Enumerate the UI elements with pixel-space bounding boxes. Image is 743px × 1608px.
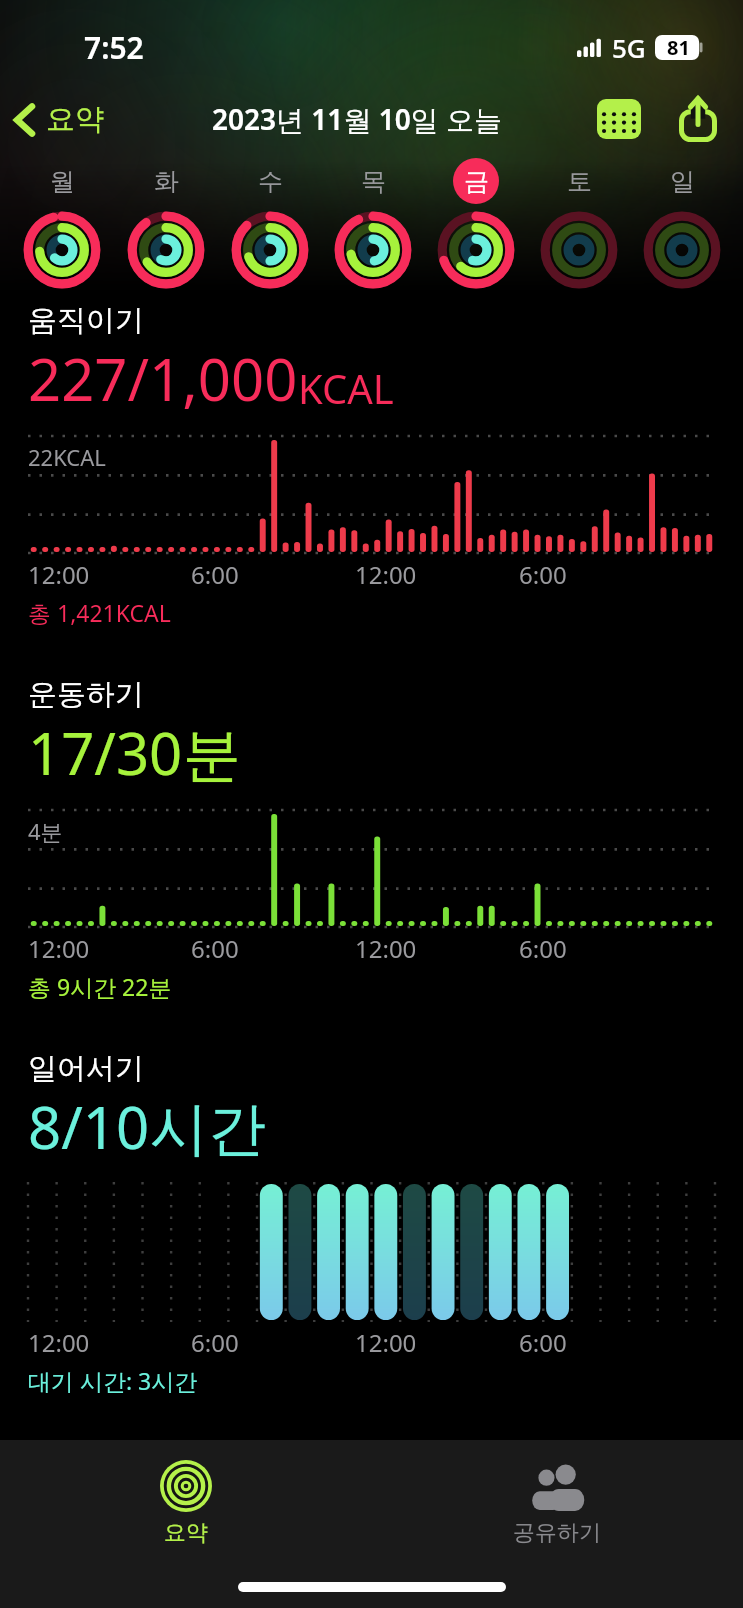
staticText: 12:00 xyxy=(355,932,417,965)
staticText: 목 xyxy=(361,166,386,197)
staticText: 요약 xyxy=(164,1519,208,1547)
staticText: 6:00 xyxy=(519,932,567,965)
staticText: 화 xyxy=(154,166,179,197)
staticText: KCAL xyxy=(298,361,394,415)
staticText: 수 xyxy=(258,166,283,197)
staticText: 6:00 xyxy=(191,1326,239,1359)
button[interactable]: 목 xyxy=(321,158,424,290)
staticText: 6:00 xyxy=(191,558,239,591)
staticText: 8/10 xyxy=(28,1087,150,1166)
staticText: 공유하기 xyxy=(513,1519,601,1547)
button[interactable]: 토 xyxy=(527,158,630,290)
staticText: 12:00 xyxy=(28,1326,90,1359)
button[interactable]: 일 xyxy=(630,158,733,290)
staticText: 총 9시간 22분 xyxy=(28,971,172,1002)
button[interactable]: Share xyxy=(671,88,725,150)
staticText: 운동하기 xyxy=(28,676,144,713)
button[interactable]: 수 xyxy=(218,158,321,290)
staticText: 12:00 xyxy=(28,932,90,965)
staticText: 총 1,421KCAL xyxy=(28,597,171,628)
staticText: 6:00 xyxy=(191,932,239,965)
button[interactable]: 금 xyxy=(424,158,527,290)
button[interactable]: 화 xyxy=(114,158,218,290)
staticText: 12:00 xyxy=(355,1326,417,1359)
button[interactable]: 공유하기 xyxy=(371,1454,743,1553)
staticText: 227/1,000 xyxy=(28,339,298,418)
staticText: 5G xyxy=(612,30,646,65)
button[interactable]: 요약 xyxy=(0,1454,371,1553)
staticText: 움직이기 xyxy=(28,302,144,339)
button[interactable]: 요약 xyxy=(0,97,114,142)
staticText: 12:00 xyxy=(28,558,90,591)
staticText: 월 xyxy=(50,166,75,197)
button[interactable]: Calendar xyxy=(589,91,649,147)
staticText: 일 xyxy=(670,166,695,197)
staticText: 토 xyxy=(567,166,592,197)
staticText: 금 xyxy=(464,166,489,197)
staticText: 7:52 xyxy=(84,27,144,68)
staticText: 4분 xyxy=(28,816,63,846)
staticText: 6:00 xyxy=(519,1326,567,1359)
staticText: 요약 xyxy=(46,101,104,138)
staticText: 12:00 xyxy=(355,558,417,591)
staticText: 2023년 11월 10일 오늘 xyxy=(212,100,502,138)
staticText: 81 xyxy=(667,34,690,61)
staticText: 17/30 xyxy=(28,713,183,792)
staticText: 일어서기 xyxy=(28,1050,144,1087)
staticText: 분 xyxy=(183,719,241,792)
staticText: 6:00 xyxy=(519,558,567,591)
button[interactable]: 월 xyxy=(10,158,114,290)
staticText: 22KCAL xyxy=(28,442,106,472)
staticText: 대기 시간: 3시간 xyxy=(28,1365,198,1396)
staticText: 시간 xyxy=(150,1093,266,1166)
